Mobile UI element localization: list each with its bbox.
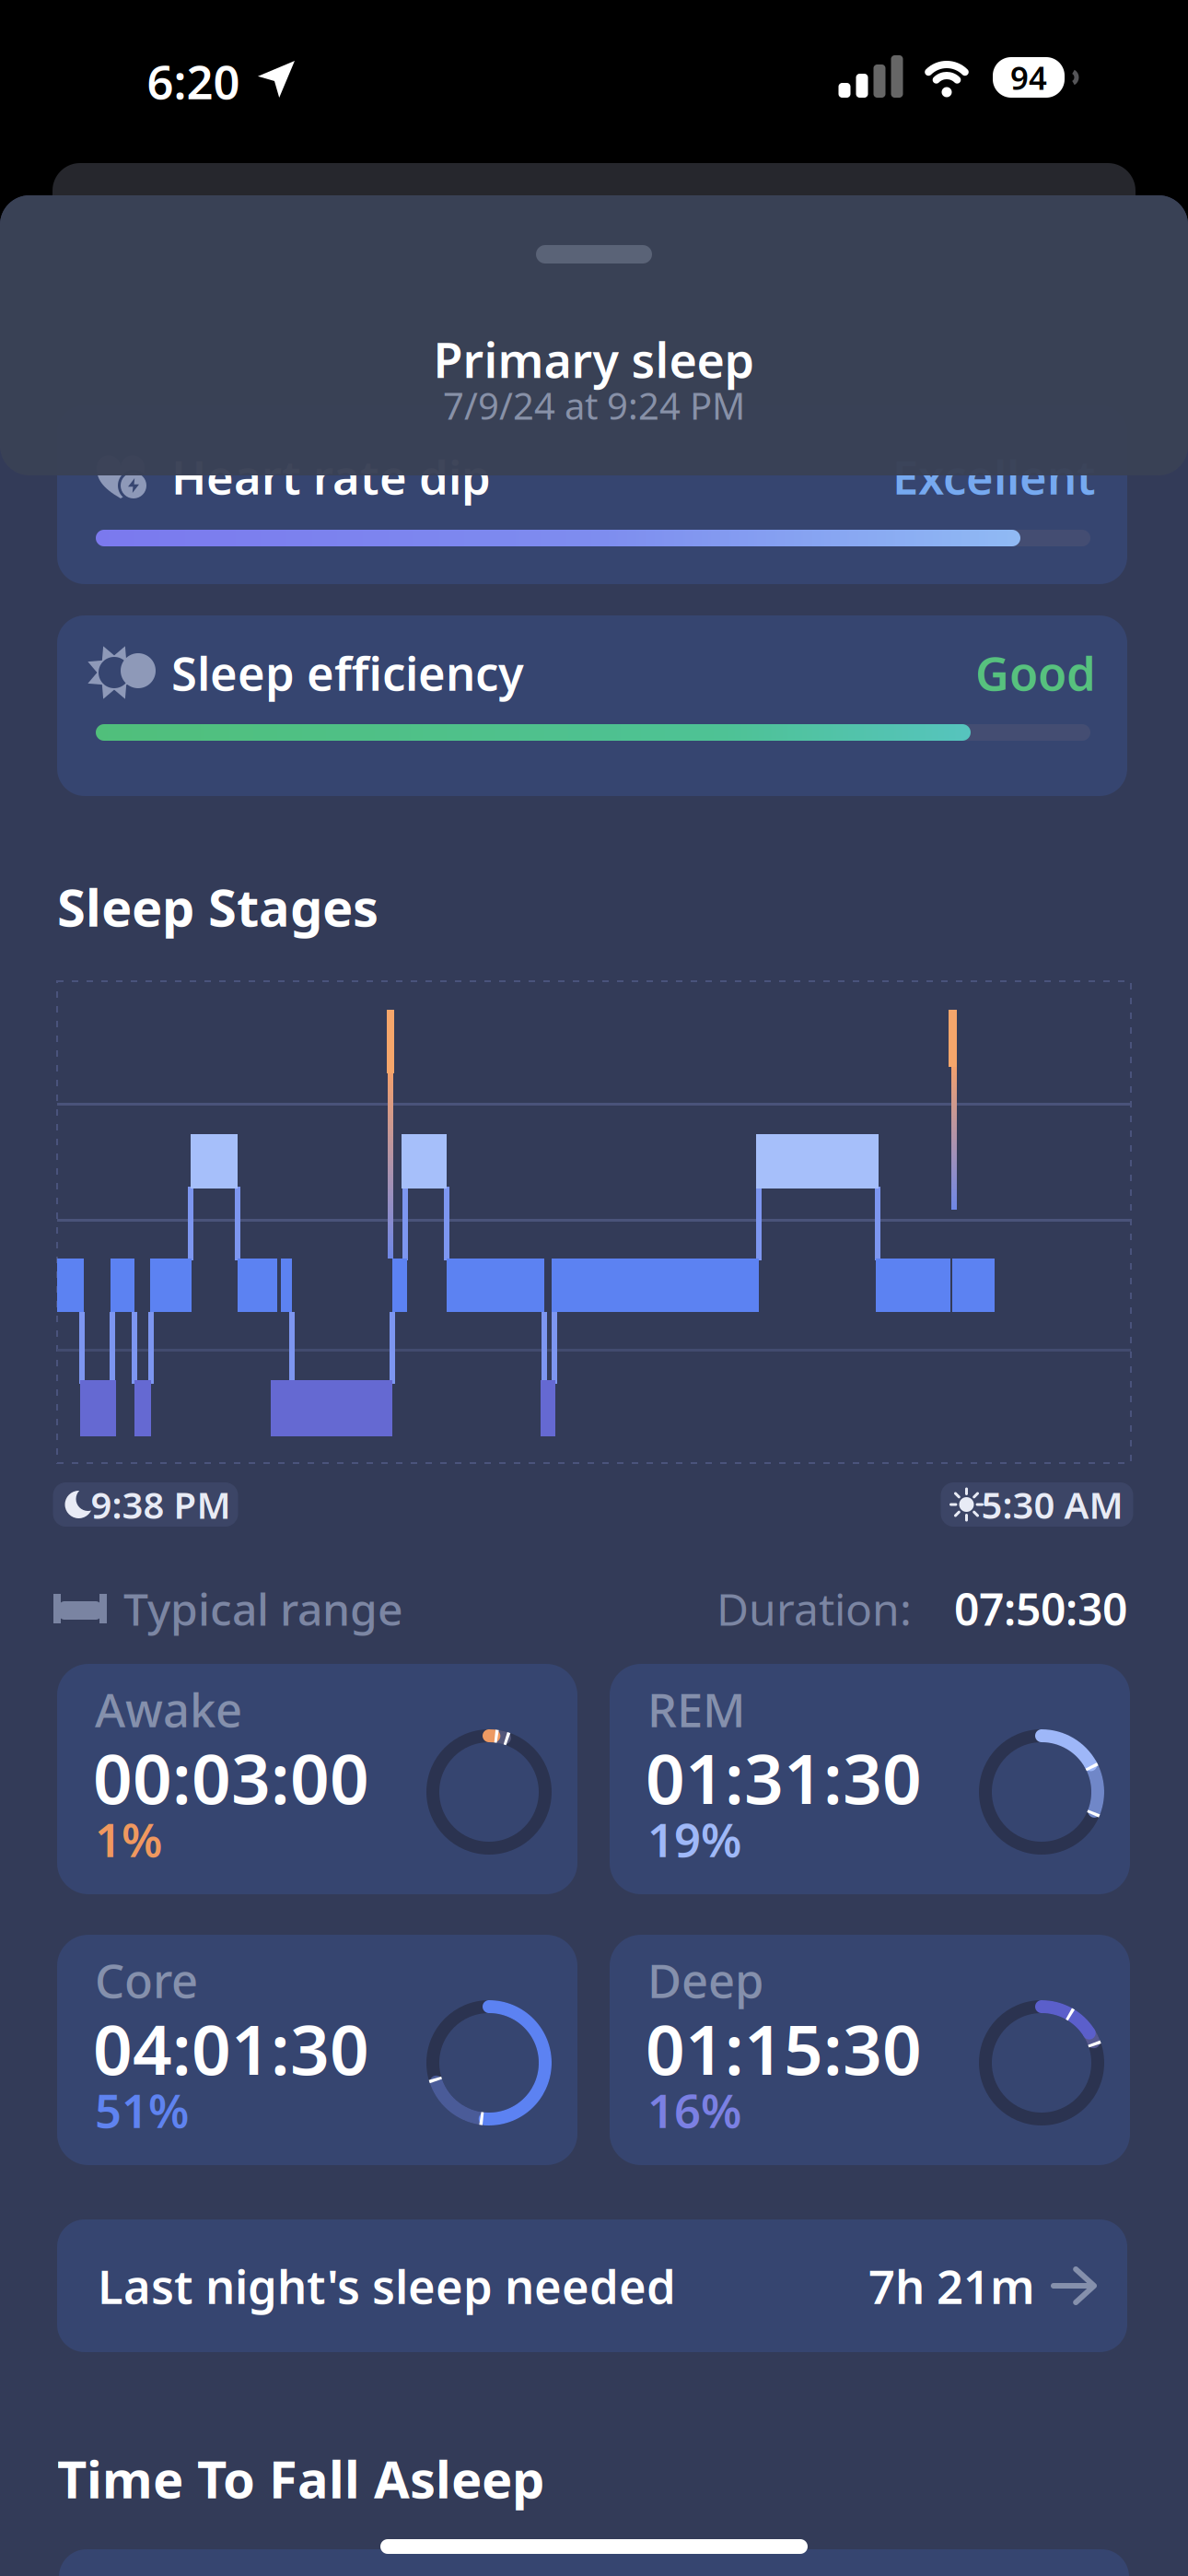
staticText: 19% xyxy=(647,1808,741,1870)
staticText: 7h 21m xyxy=(868,2255,1035,2317)
staticText: 7/9/24 at 9:24 PM xyxy=(443,381,745,430)
staticText: Core xyxy=(95,1949,198,2011)
staticText: 94 xyxy=(1010,56,1047,99)
staticText: 07:50:30 xyxy=(954,1579,1127,1638)
staticText: Sleep Stages xyxy=(57,872,379,941)
staticText: 01:31:30 xyxy=(646,1732,922,1823)
staticText: Last night's sleep needed xyxy=(98,2255,676,2317)
staticText: 16% xyxy=(647,2079,741,2141)
staticText: Excellent xyxy=(892,445,1096,507)
staticText: Heart rate dip xyxy=(171,445,491,507)
staticText: Typical range xyxy=(123,1579,403,1638)
staticText: REM xyxy=(647,1678,746,1740)
staticText: 9:38 PM xyxy=(91,1480,231,1529)
staticText: 01:15:30 xyxy=(646,2002,922,2094)
button[interactable]: Last night's sleep needed xyxy=(0,0,1188,2576)
staticText: 1% xyxy=(95,1808,162,1870)
staticText: 51% xyxy=(95,2079,189,2141)
staticText: Duration: xyxy=(716,1579,912,1638)
staticText: 00:03:00 xyxy=(93,1732,369,1823)
staticText: Time To Fall Asleep xyxy=(57,2444,544,2513)
staticText: 04:01:30 xyxy=(93,2002,369,2094)
staticText: 6:20 xyxy=(147,50,240,112)
staticText: Deep xyxy=(647,1949,763,2011)
staticText: Good xyxy=(975,642,1096,704)
staticText: Primary sleep xyxy=(433,328,755,391)
button[interactable]: Heart rate dip xyxy=(0,0,1188,2576)
staticText: 5:30 AM xyxy=(981,1480,1123,1529)
staticText: Sleep efficiency xyxy=(171,642,524,704)
staticText: Awake xyxy=(95,1678,242,1740)
button[interactable]: Sleep efficiency xyxy=(0,0,1188,2576)
